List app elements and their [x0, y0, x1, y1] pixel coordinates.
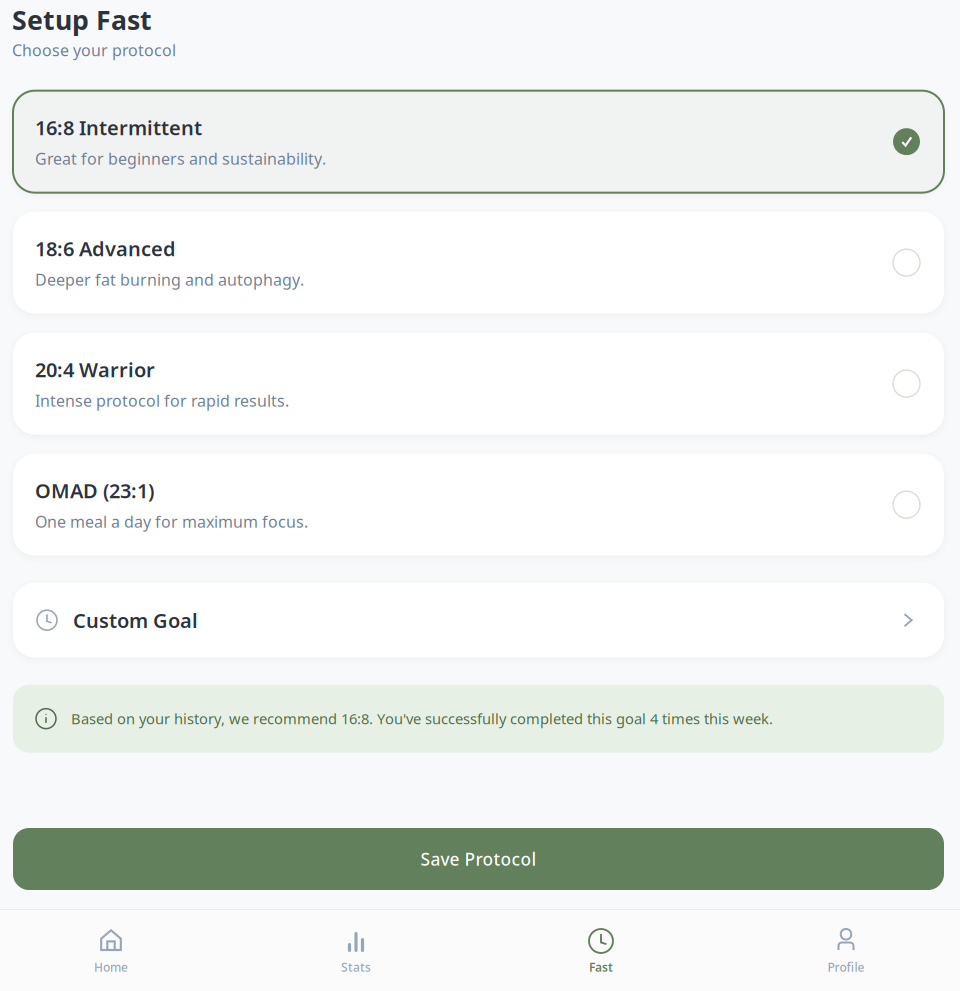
button[interactable]: Custom Goal	[13, 583, 944, 658]
staticText: Home	[94, 959, 128, 975]
button[interactable]: 18:6 Advanced	[13, 212, 944, 314]
staticText: Setup Fast	[12, 2, 152, 37]
staticText: Custom Goal	[73, 607, 198, 633]
button[interactable]: 20:4 Warrior	[13, 333, 944, 435]
staticText: Deeper fat burning and autophagy.	[35, 269, 304, 290]
staticText: OMAD (23:1)	[35, 477, 154, 504]
button[interactable]: Home	[0, 909, 233, 991]
button[interactable]: Profile	[723, 909, 960, 991]
staticText: Stats	[341, 959, 371, 975]
staticText: Fast	[589, 959, 613, 975]
staticText: 18:6 Advanced	[35, 235, 176, 262]
staticText: Save Protocol	[420, 847, 536, 870]
staticText: Based on your history, we recommend 16:8…	[71, 709, 773, 728]
button[interactable]: Fast	[478, 909, 723, 991]
button[interactable]: Stats	[233, 909, 478, 991]
staticText: Intense protocol for rapid results.	[35, 390, 289, 411]
staticText: Profile	[827, 959, 864, 975]
button[interactable]: OMAD (23:1)	[13, 454, 944, 556]
button[interactable]: Save Protocol	[13, 828, 944, 890]
staticText: 20:4 Warrior	[35, 356, 155, 383]
staticText: One meal a day for maximum focus.	[35, 511, 308, 532]
staticText: Choose your protocol	[12, 39, 176, 61]
button[interactable]: 16:8 Intermittent	[13, 91, 944, 193]
staticText: 16:8 Intermittent	[35, 114, 202, 141]
staticText: Great for beginners and sustainability.	[35, 148, 326, 169]
